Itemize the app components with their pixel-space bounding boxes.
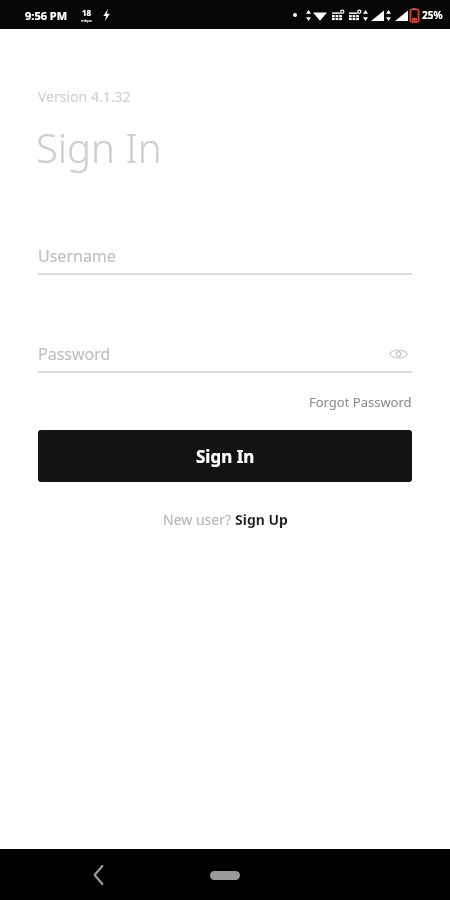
staticText: New user?: [163, 510, 235, 529]
button[interactable]: Password: [38, 337, 412, 371]
staticText: Version 4.1.32: [38, 87, 131, 106]
staticText: mbps: [81, 18, 92, 23]
staticText: 9:56 PM: [25, 8, 68, 23]
staticText: 25%: [422, 8, 443, 22]
staticText: Sign In: [196, 445, 255, 468]
button[interactable]: Back: [78, 855, 118, 895]
staticText: 18: [82, 7, 92, 18]
staticText: Forgot Password: [309, 393, 412, 411]
button[interactable]: Username: [38, 239, 412, 273]
staticText: Sign Up: [235, 510, 288, 529]
staticText: Password: [38, 343, 111, 365]
button[interactable]: Show password: [384, 340, 412, 368]
button[interactable]: Sign In: [38, 430, 412, 482]
staticText: Sign In: [36, 120, 162, 174]
staticText: Username: [38, 245, 116, 267]
button[interactable]: Sign Up: [235, 510, 288, 529]
button[interactable]: Home: [195, 858, 255, 892]
button[interactable]: Forgot Password: [305, 390, 416, 414]
